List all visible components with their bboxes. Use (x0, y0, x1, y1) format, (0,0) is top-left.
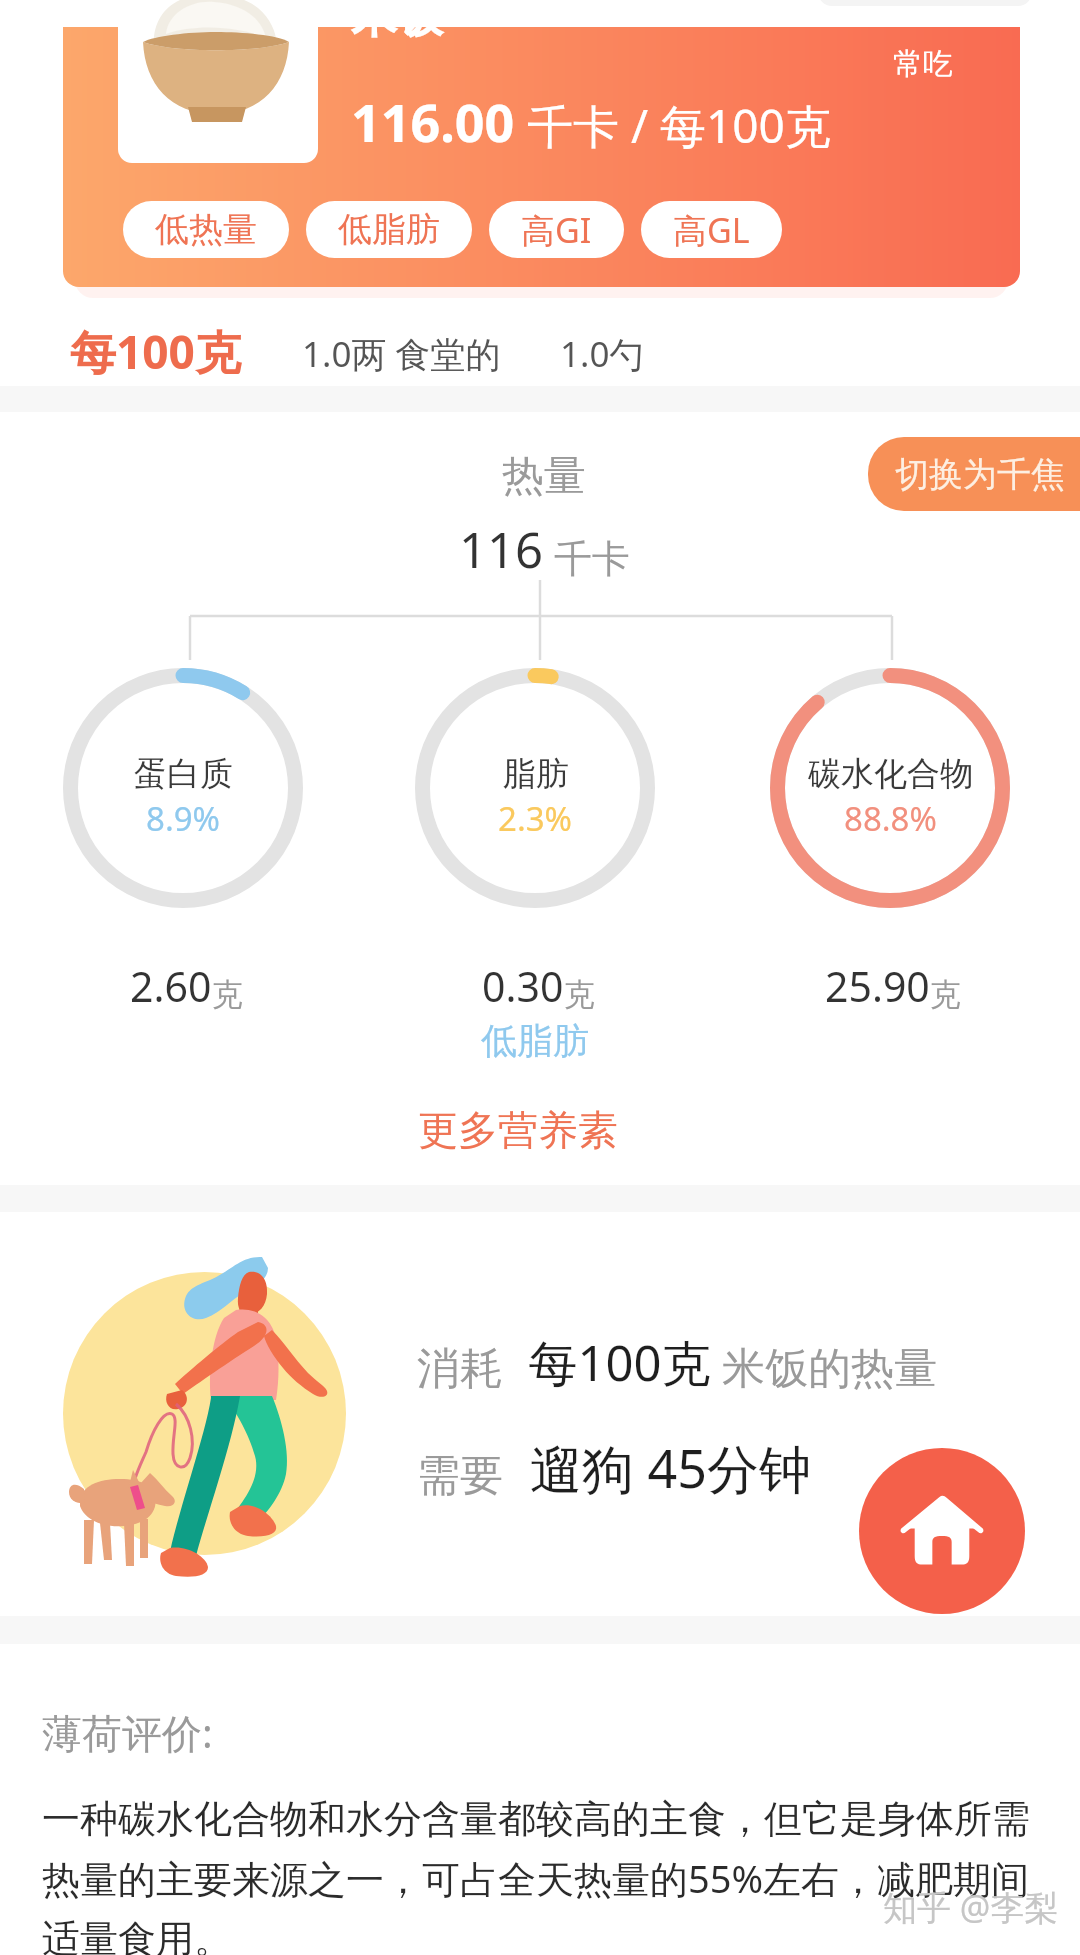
staticText: 遛狗 45分钟 (503, 1432, 812, 1503)
staticText: 0.30 (482, 958, 564, 1014)
staticText: 米饭的热量 (711, 1337, 938, 1396)
staticText: 克 (930, 975, 961, 1014)
staticText: 高GL (673, 207, 750, 253)
staticText: 25.90 (825, 958, 930, 1014)
staticText: 切换为千焦 (895, 453, 1065, 496)
button[interactable]: 低脂肪 (306, 201, 472, 258)
button[interactable]: 高GI (489, 201, 624, 258)
staticText: 更多营养素 (418, 1105, 618, 1155)
staticText: 8.9% (146, 796, 221, 841)
staticText: 千卡 / 每100克 (515, 94, 831, 157)
button[interactable]: 常吃 (893, 45, 953, 83)
staticText: 116 (459, 516, 544, 583)
button[interactable]: 每100克 (70, 320, 241, 395)
staticText: 每100克 (503, 1329, 711, 1396)
staticText: 碳水化合物 (808, 753, 973, 795)
staticText: 蛋白质 (134, 753, 233, 795)
staticText: 116.00 (351, 86, 515, 157)
staticText: 一种碳水化合物和水分含量都较高的主食，但它是身体所需 热量的主要来源之一，可占全… (42, 1795, 1080, 1955)
staticText: 克 (212, 975, 243, 1014)
staticText: 克 (564, 975, 595, 1014)
staticText: 薄荷评价: (42, 1705, 213, 1760)
button[interactable]: 切换为千焦 (868, 437, 1080, 511)
staticText: 2.3% (498, 796, 573, 841)
staticText: 脂肪 (503, 753, 569, 795)
staticText: 低脂肪 (338, 208, 440, 251)
button[interactable]: 高GL (641, 201, 782, 258)
button[interactable]: 1.0勺 (560, 330, 645, 378)
staticText: 高GI (521, 207, 592, 253)
button[interactable]: Home (859, 1448, 1025, 1614)
staticText: 消耗 (417, 1342, 503, 1396)
staticText: 米饭 (351, 0, 443, 46)
staticText: 知乎 @李梨 (883, 1884, 1059, 1930)
staticText: 热量 (4, 450, 1080, 503)
staticText: 88.8% (844, 796, 937, 841)
button[interactable]: 1.0两 食堂的 (302, 330, 501, 378)
staticText: 低脂肪 (415, 1018, 655, 1063)
staticText: 低热量 (155, 208, 257, 251)
staticText: 2.60 (130, 958, 212, 1014)
button[interactable]: 低热量 (123, 201, 289, 258)
staticText: 千卡 (544, 531, 630, 583)
button[interactable]: 更多营养素 (410, 1098, 626, 1162)
button[interactable] (63, 27, 1020, 287)
staticText: 每100克 (70, 320, 241, 383)
staticText: 需要 (417, 1449, 503, 1503)
